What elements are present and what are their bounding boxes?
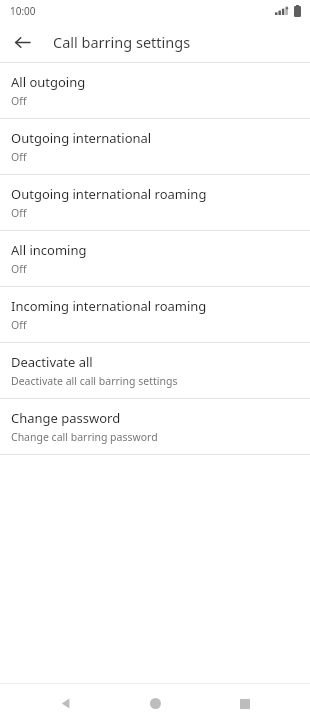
staticText: Incoming international roaming xyxy=(11,297,207,315)
staticText: Deactivate all xyxy=(11,353,93,371)
staticText: Deactivate all call barring settings xyxy=(11,374,178,388)
button[interactable]: Outgoing international xyxy=(0,119,310,174)
staticText: Outgoing international xyxy=(11,129,152,147)
button[interactable]: Back xyxy=(42,684,90,723)
button[interactable]: Change password xyxy=(0,399,310,454)
staticText: 10:00 xyxy=(10,4,36,18)
staticText: Call barring settings xyxy=(53,32,191,52)
staticText: Off xyxy=(11,318,27,332)
button[interactable]: Recent apps xyxy=(221,684,269,723)
staticText: All incoming xyxy=(11,241,87,259)
button[interactable]: Incoming international roaming xyxy=(0,287,310,342)
button[interactable]: All incoming xyxy=(0,231,310,286)
button[interactable]: Deactivate all xyxy=(0,343,310,398)
button[interactable]: Home xyxy=(131,684,179,723)
staticText: Off xyxy=(11,150,27,164)
button[interactable]: Outgoing international roaming xyxy=(0,175,310,230)
staticText: Off xyxy=(11,206,27,220)
button[interactable]: All outgoing xyxy=(0,63,310,118)
staticText: Change call barring password xyxy=(11,430,158,444)
staticText: Off xyxy=(11,262,27,276)
staticText: Change password xyxy=(11,409,121,427)
button[interactable]: Back xyxy=(6,26,39,59)
staticText: All outgoing xyxy=(11,73,86,91)
staticText: Outgoing international roaming xyxy=(11,185,207,203)
staticText: Off xyxy=(11,94,27,108)
